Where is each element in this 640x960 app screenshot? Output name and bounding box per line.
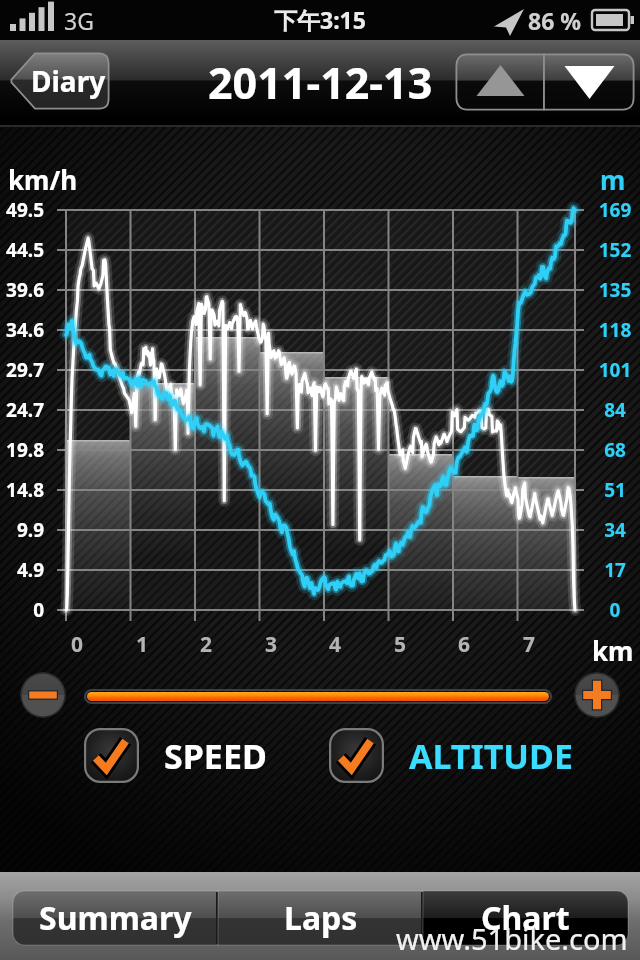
staticText: 34.6 bbox=[0, 317, 44, 343]
staticText: km bbox=[592, 633, 634, 668]
staticText: 4 bbox=[329, 630, 342, 659]
button[interactable]: Chart bbox=[423, 891, 628, 945]
staticText: Summary bbox=[39, 896, 192, 940]
staticText: 152 bbox=[593, 237, 637, 263]
staticText: 14.8 bbox=[0, 477, 44, 503]
staticText: Chart bbox=[481, 896, 570, 940]
staticText: 下午3:15 bbox=[274, 4, 366, 35]
button[interactable]: Next day bbox=[544, 53, 635, 111]
button[interactable]: ALTITUDE bbox=[329, 728, 548, 783]
button[interactable]: Summary bbox=[13, 891, 218, 945]
staticText: Diary bbox=[31, 62, 106, 100]
staticText: 0 bbox=[593, 597, 637, 623]
staticText: 39.6 bbox=[0, 277, 44, 303]
staticText: 3G bbox=[64, 5, 94, 36]
staticText: 68 bbox=[593, 437, 637, 463]
staticText: 17 bbox=[593, 557, 637, 583]
staticText: 3 bbox=[265, 630, 278, 659]
staticText: SPEED bbox=[164, 733, 267, 779]
staticText: 5 bbox=[394, 630, 407, 659]
staticText: 2 bbox=[200, 630, 213, 659]
staticText: 6 bbox=[458, 630, 471, 659]
staticText: 51 bbox=[593, 477, 637, 503]
staticText: 84 bbox=[593, 397, 637, 423]
staticText: 34 bbox=[593, 517, 637, 543]
staticText: 1 bbox=[136, 630, 149, 659]
staticText: 101 bbox=[593, 357, 637, 383]
staticText: 19.8 bbox=[0, 437, 44, 463]
staticText: 9.9 bbox=[0, 517, 44, 543]
staticText: ALTITUDE bbox=[409, 733, 573, 779]
button[interactable]: Zoom in bbox=[574, 672, 620, 718]
staticText: 0 bbox=[0, 597, 44, 623]
staticText: 0 bbox=[71, 630, 84, 659]
button[interactable]: Zoom out bbox=[20, 672, 66, 718]
button[interactable]: Laps bbox=[218, 891, 423, 945]
button[interactable]: SPEED bbox=[84, 728, 242, 783]
button[interactable]: Diary bbox=[10, 52, 110, 110]
staticText: 29.7 bbox=[0, 357, 44, 383]
staticText: m bbox=[600, 162, 626, 197]
staticText: 135 bbox=[593, 277, 637, 303]
staticText: www.51bike.com bbox=[396, 919, 628, 958]
staticText: 44.5 bbox=[0, 237, 44, 263]
staticText: 86 % bbox=[528, 5, 582, 36]
staticText: 2011-12-13 bbox=[208, 53, 433, 112]
button[interactable]: Previous day bbox=[455, 53, 544, 111]
staticText: 24.7 bbox=[0, 397, 44, 423]
staticText: 169 bbox=[593, 197, 637, 223]
staticText: 4.9 bbox=[0, 557, 44, 583]
staticText: 7 bbox=[523, 630, 536, 659]
staticText: Laps bbox=[284, 896, 358, 940]
staticText: 49.5 bbox=[0, 197, 44, 223]
staticText: 118 bbox=[593, 317, 637, 343]
staticText: km/h bbox=[8, 162, 78, 197]
